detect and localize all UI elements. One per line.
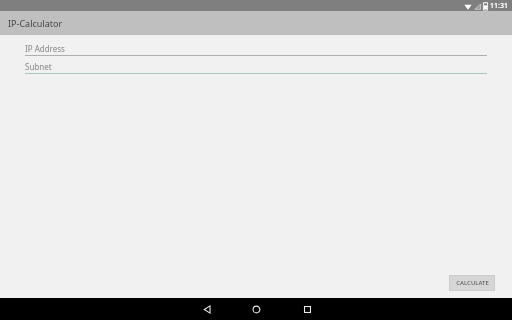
staticText: Subnet [25,61,52,72]
staticText: IP Address [25,43,65,54]
button[interactable]: CALCULATE [449,275,495,291]
staticText: IP-Calculator [8,17,63,29]
button[interactable]: Subnet [0,60,512,76]
button[interactable]: Home [245,298,267,320]
button[interactable]: Recent apps [296,298,318,320]
button[interactable]: Back [196,298,218,320]
staticText: CALCULATE [456,279,489,287]
button[interactable]: IP Address [0,42,512,58]
staticText: 11:31 [490,1,508,11]
